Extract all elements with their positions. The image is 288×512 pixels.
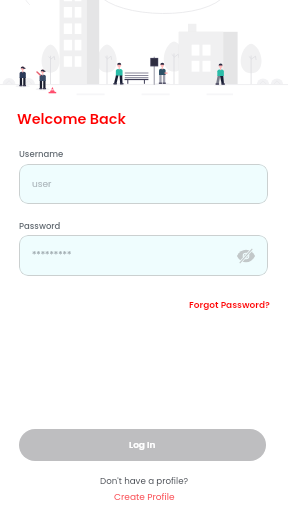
button[interactable]: Forgot Password?	[189, 299, 270, 312]
staticText: Username	[19, 148, 64, 160]
staticText: user	[32, 178, 52, 191]
button[interactable]: Show password	[233, 243, 259, 269]
button[interactable]: *********	[19, 235, 268, 276]
staticText: Password	[19, 220, 61, 232]
staticText: Log In	[129, 439, 156, 452]
staticText: Welcome Back	[17, 109, 126, 129]
button[interactable]: user	[19, 164, 268, 204]
button[interactable]: Create Profile	[114, 491, 175, 504]
staticText: *********	[32, 249, 72, 262]
button[interactable]: Log In	[19, 429, 266, 461]
staticText: Don't have a profile?	[100, 475, 189, 487]
